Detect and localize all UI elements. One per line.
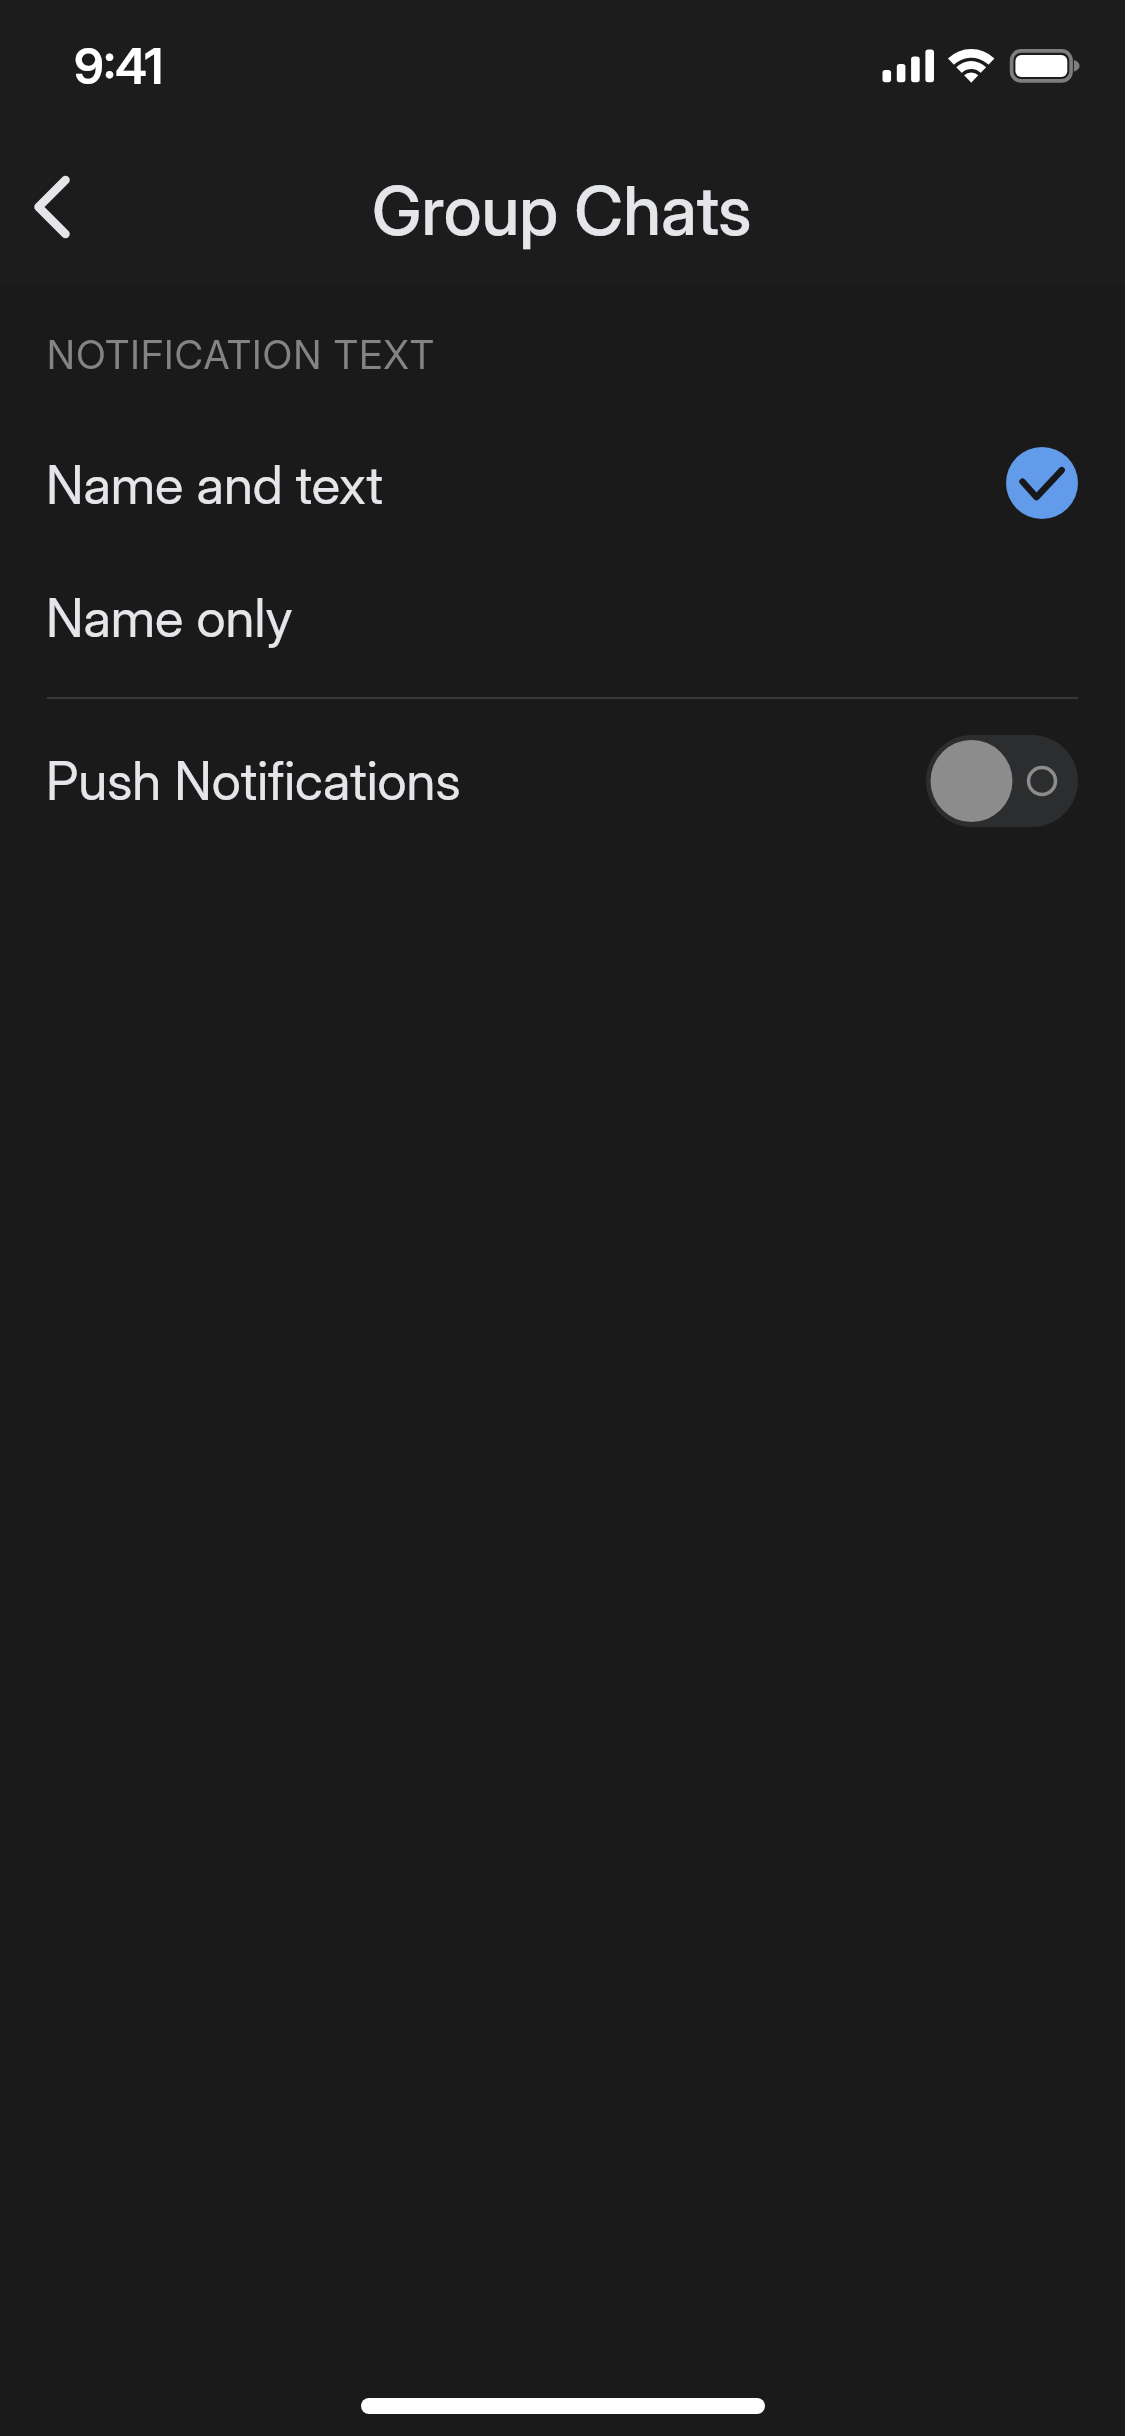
staticText: 9:41 <box>74 37 164 96</box>
staticText: Group Chats <box>372 170 752 252</box>
staticText: Push Notifications <box>46 749 461 813</box>
staticText: NOTIFICATION TEXT <box>47 331 436 378</box>
button[interactable]: Name and text <box>0 423 1125 547</box>
staticText: Name and text <box>46 453 383 517</box>
button[interactable]: Push notifications, off <box>926 735 1078 827</box>
button[interactable]: Push Notifications <box>0 698 1125 864</box>
button[interactable]: Back <box>0 147 128 267</box>
button[interactable]: Name only <box>0 556 1125 680</box>
staticText: Name only <box>46 586 293 650</box>
